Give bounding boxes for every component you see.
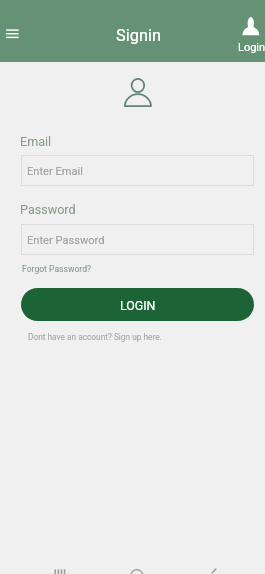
- staticText: Email: [20, 134, 52, 149]
- staticText: Password: [20, 202, 76, 217]
- button[interactable]: Enter Password: [21, 224, 254, 255]
- button[interactable]: Recents: [46, 560, 76, 574]
- button[interactable]: Open navigation menu: [0, 20, 26, 45]
- button[interactable]: Forgot Password?: [22, 264, 92, 274]
- button[interactable]: Enter Email: [21, 155, 254, 186]
- staticText: Enter Password: [27, 234, 105, 247]
- button[interactable]: LOGIN: [21, 288, 254, 321]
- staticText: Forgot Password?: [22, 264, 92, 274]
- button[interactable]: Dont have an account? Sign up here.: [28, 332, 162, 342]
- staticText: Enter Email: [27, 165, 83, 178]
- staticText: Signin: [116, 26, 162, 45]
- staticText: LOGIN: [120, 298, 156, 313]
- button[interactable]: Back: [204, 560, 226, 574]
- button[interactable]: Home: [126, 560, 147, 574]
- staticText: Login: [238, 41, 265, 54]
- button[interactable]: Login: [234, 12, 265, 54]
- staticText: Dont have an account? Sign up here.: [28, 332, 162, 342]
